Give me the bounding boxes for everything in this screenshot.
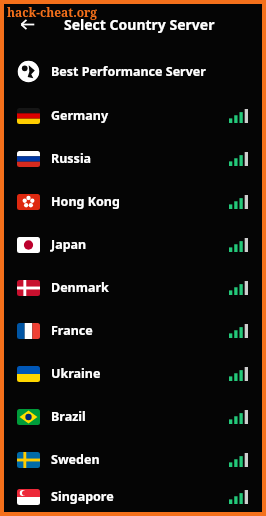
staticText: Hong Kong bbox=[51, 193, 120, 210]
staticText: Ukraine bbox=[51, 365, 101, 382]
other: Signal strength bbox=[229, 367, 248, 381]
other: Signal strength bbox=[229, 490, 248, 504]
button[interactable]: Sweden bbox=[4, 438, 262, 481]
button[interactable]: Hong Kong bbox=[4, 180, 262, 223]
staticText: Singapore bbox=[51, 488, 114, 505]
other: Signal strength bbox=[229, 238, 248, 252]
staticText: Brazil bbox=[51, 408, 86, 425]
other: Signal strength bbox=[229, 281, 248, 295]
staticText: France bbox=[51, 322, 93, 339]
other: Signal strength bbox=[229, 152, 248, 166]
button[interactable]: Singapore bbox=[4, 481, 262, 512]
button[interactable]: Best Performance Server bbox=[4, 52, 262, 90]
other: Signal strength bbox=[229, 410, 248, 424]
staticText: Germany bbox=[51, 107, 109, 124]
staticText: Japan bbox=[51, 236, 87, 253]
button[interactable]: Brazil bbox=[4, 395, 262, 438]
button[interactable]: France bbox=[4, 309, 262, 352]
button[interactable]: Ukraine bbox=[4, 352, 262, 395]
other: Signal strength bbox=[229, 453, 248, 467]
staticText: Denmark bbox=[51, 279, 109, 296]
button[interactable]: Russia bbox=[4, 137, 262, 180]
button[interactable]: Germany bbox=[4, 94, 262, 137]
staticText: hack-cheat.org bbox=[7, 4, 98, 20]
button[interactable]: Denmark bbox=[4, 266, 262, 309]
staticText: Select Country Server bbox=[64, 15, 215, 34]
button[interactable]: Back bbox=[12, 9, 42, 39]
other: Signal strength bbox=[229, 109, 248, 123]
staticText: Russia bbox=[51, 150, 92, 167]
other: Signal strength bbox=[229, 324, 248, 338]
other: Signal strength bbox=[229, 195, 248, 209]
staticText: Best Performance Server bbox=[51, 63, 206, 80]
button[interactable]: Japan bbox=[4, 223, 262, 266]
staticText: Sweden bbox=[51, 451, 100, 468]
